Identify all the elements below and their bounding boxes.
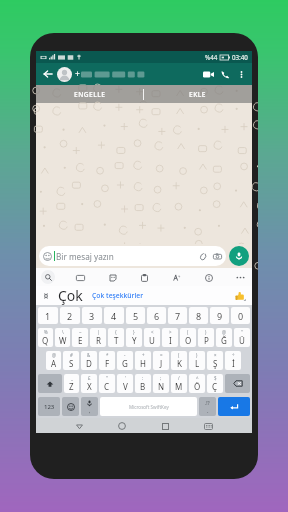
staticText: @ bbox=[222, 329, 226, 335]
button[interactable]: 9 bbox=[210, 307, 229, 324]
staticText: 8 bbox=[196, 310, 202, 322]
button[interactable]: Voice call bbox=[217, 66, 234, 83]
button[interactable]: ' bbox=[117, 374, 133, 393]
staticText: Z bbox=[69, 381, 74, 392]
button[interactable]: \ bbox=[55, 328, 70, 347]
button[interactable]: Back bbox=[40, 66, 56, 82]
button[interactable]: Shift bbox=[38, 374, 62, 393]
button[interactable]: } bbox=[126, 328, 142, 347]
button[interactable]: ~ bbox=[72, 328, 88, 347]
staticText: Çok teşekkürler bbox=[92, 291, 144, 300]
staticText: D bbox=[86, 358, 92, 369]
staticText: K bbox=[177, 358, 182, 369]
button[interactable]: ) bbox=[189, 351, 205, 370]
button[interactable]: ) bbox=[198, 328, 214, 347]
button[interactable]: % bbox=[38, 328, 53, 347]
button[interactable]: 5 bbox=[126, 307, 145, 324]
staticText: ENGELLE bbox=[74, 90, 106, 99]
staticText: ) bbox=[196, 352, 198, 358]
button[interactable]: 2 bbox=[60, 307, 80, 324]
button[interactable]: Search bbox=[41, 270, 55, 284]
button[interactable]: ENGELLE bbox=[36, 85, 143, 103]
button[interactable]: 3 bbox=[82, 307, 102, 324]
button[interactable]: ^ bbox=[189, 374, 205, 393]
button[interactable]: Microsoft SwiftKey bbox=[100, 397, 197, 416]
button[interactable]: Recents bbox=[158, 419, 172, 433]
button[interactable]: { bbox=[108, 328, 124, 347]
staticText: .!? bbox=[205, 400, 210, 407]
button[interactable]: ; bbox=[153, 374, 169, 393]
button[interactable]: 6 bbox=[147, 307, 166, 324]
button[interactable]: * bbox=[99, 351, 115, 370]
button[interactable]: 4 bbox=[104, 307, 124, 324]
staticText: { bbox=[115, 329, 117, 335]
staticText: R bbox=[96, 335, 101, 346]
staticText: Ş bbox=[213, 358, 218, 369]
button[interactable]: More options bbox=[234, 67, 248, 81]
button[interactable]: .!? bbox=[199, 397, 216, 416]
button[interactable]: Info bbox=[202, 271, 215, 284]
button[interactable]: 7 bbox=[168, 307, 187, 324]
button[interactable]: > bbox=[162, 328, 178, 347]
button[interactable]: Çok teşekkürler bbox=[92, 291, 144, 300]
button[interactable]: " bbox=[99, 374, 115, 393]
button[interactable]: Back bbox=[72, 419, 86, 433]
button[interactable]: 0 bbox=[231, 307, 250, 324]
button[interactable]: & bbox=[81, 351, 97, 370]
button[interactable]: £ bbox=[81, 374, 97, 393]
staticText: 3 bbox=[89, 310, 95, 322]
staticText: F bbox=[105, 358, 110, 369]
button[interactable]: / bbox=[171, 374, 187, 393]
button[interactable]: Expand bbox=[40, 290, 52, 302]
button[interactable]: Enter bbox=[218, 397, 250, 416]
button[interactable]: Clipboard bbox=[138, 271, 151, 284]
button[interactable]: # bbox=[63, 351, 79, 370]
button[interactable]: ÷ bbox=[225, 351, 241, 370]
staticText: $ bbox=[214, 375, 217, 381]
staticText: Microsoft SwiftKey bbox=[129, 404, 169, 410]
button[interactable]: Voice input bbox=[81, 397, 98, 416]
button[interactable]: Backspace bbox=[225, 374, 250, 393]
button[interactable]: Çok bbox=[58, 286, 83, 305]
button[interactable]: = bbox=[153, 351, 169, 370]
button[interactable]: < bbox=[144, 328, 160, 347]
button[interactable]: More bbox=[234, 271, 247, 284]
button[interactable]: EKLE bbox=[144, 85, 252, 103]
button[interactable]: ( bbox=[180, 328, 196, 347]
staticText: ' bbox=[125, 375, 126, 381]
button[interactable]: Video call bbox=[200, 66, 217, 83]
button[interactable]: + bbox=[135, 351, 151, 370]
button[interactable]: Translate bbox=[170, 271, 183, 284]
staticText: M bbox=[175, 381, 183, 392]
button[interactable]: Stickers bbox=[106, 271, 119, 284]
button[interactable]: _ bbox=[64, 374, 79, 393]
staticText: @ bbox=[52, 352, 56, 358]
button[interactable]: | bbox=[90, 328, 106, 347]
button[interactable]: Profile photo bbox=[57, 67, 72, 82]
button[interactable]: Thumbs up emoji bbox=[232, 288, 248, 304]
button[interactable]: @ bbox=[46, 351, 61, 370]
button[interactable]: × bbox=[207, 351, 223, 370]
staticText: ; bbox=[160, 375, 162, 381]
staticText: T bbox=[114, 335, 119, 346]
staticText: % bbox=[44, 329, 48, 335]
button[interactable]: 8 bbox=[189, 307, 208, 324]
staticText: 5 bbox=[133, 310, 139, 322]
button[interactable]: 1 bbox=[38, 307, 58, 324]
button[interactable]: ( bbox=[171, 351, 187, 370]
button[interactable]: : bbox=[135, 374, 151, 393]
button[interactable]: Home bbox=[115, 419, 129, 433]
button[interactable]: Bir mesaj yazın bbox=[39, 246, 226, 266]
button[interactable]: GIF bbox=[74, 271, 87, 284]
button[interactable]: @ bbox=[216, 328, 232, 347]
button[interactable]: Emoji bbox=[62, 397, 79, 416]
staticText: S bbox=[69, 358, 74, 369]
staticText: 9 bbox=[217, 310, 223, 322]
button[interactable]: " bbox=[234, 328, 250, 347]
button[interactable]: $ bbox=[207, 374, 223, 393]
button[interactable]: - bbox=[117, 351, 133, 370]
staticText: P bbox=[204, 335, 209, 346]
button[interactable]: Voice message bbox=[229, 246, 249, 266]
button[interactable]: Hide keyboard bbox=[201, 419, 215, 433]
button[interactable]: 123 bbox=[38, 397, 60, 416]
